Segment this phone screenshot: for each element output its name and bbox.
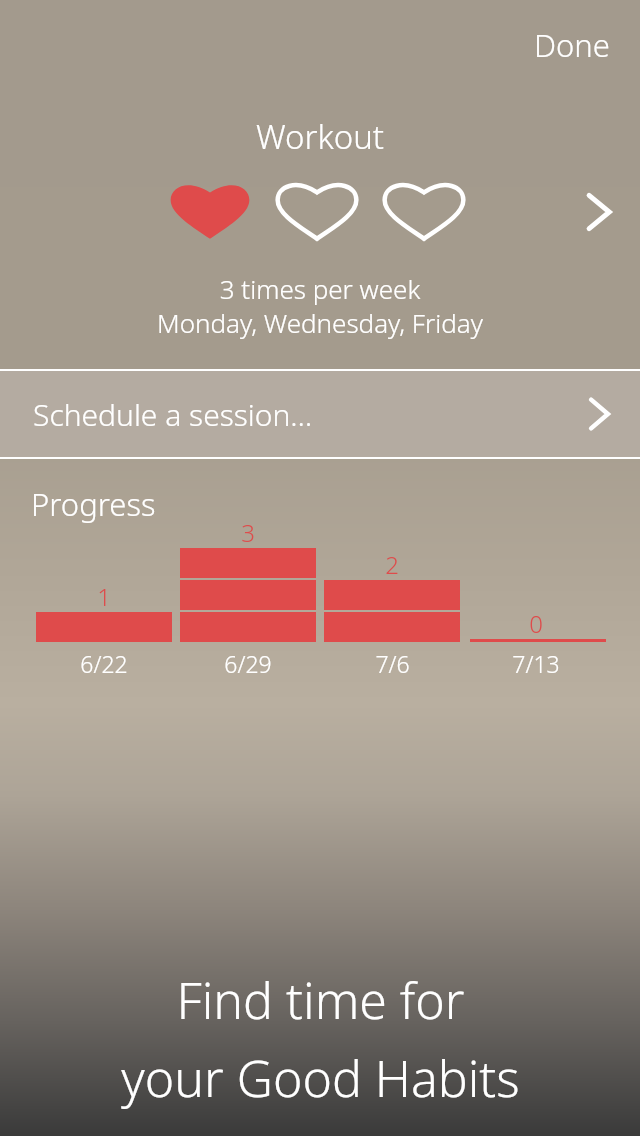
staticText: 7/6 — [375, 648, 410, 679]
staticText: Schedule a session… — [33, 394, 313, 435]
button[interactable]: Schedule a session… — [0, 369, 640, 459]
staticText: Progress — [31, 483, 156, 525]
staticText: Workout — [0, 114, 640, 159]
staticText: your Good Habits — [121, 1044, 520, 1112]
staticText: 3 — [241, 516, 255, 549]
staticText: Done — [534, 24, 610, 66]
staticText: 6/22 — [80, 648, 128, 679]
button[interactable]: Workout — [0, 0, 640, 370]
staticText: 1 — [97, 580, 111, 613]
button[interactable]: Done — [526, 18, 618, 72]
staticText: 0 — [529, 607, 543, 640]
staticText: 3 times per week — [0, 271, 640, 306]
staticText: Monday, Wednesday, Friday — [0, 305, 640, 340]
staticText: 2 — [385, 548, 399, 581]
other: Edit habit — [583, 189, 619, 235]
staticText: 7/13 — [512, 648, 560, 679]
staticText: 6/29 — [224, 648, 272, 679]
staticText: Find time for — [176, 966, 465, 1034]
